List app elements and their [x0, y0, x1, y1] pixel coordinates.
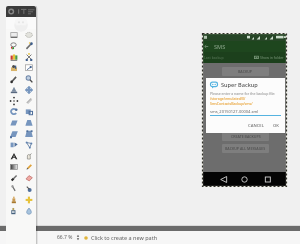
staticText: CREATE BACKUPS — [231, 134, 261, 139]
staticText: 66.7 % — [57, 234, 73, 241]
staticText: CANCEL — [248, 123, 264, 129]
button[interactable]: BACKUP — [222, 67, 269, 76]
button[interactable]: CREATE BACKUPS — [222, 132, 269, 141]
button[interactable]: Back — [202, 41, 211, 52]
button[interactable]: BACKUP ALL MESSAGES — [222, 144, 269, 153]
button[interactable]: Color Picker — [6, 73, 21, 84]
staticText: SMS — [214, 43, 226, 51]
button[interactable]: Alignment — [6, 95, 21, 106]
button[interactable]: Perspective — [21, 117, 36, 128]
button[interactable]: Foreground Select — [6, 62, 21, 73]
staticText: sms_20150127-00004.xml — [210, 109, 259, 114]
button[interactable]: Text — [6, 150, 21, 161]
button[interactable]: Cage Transform — [21, 139, 36, 150]
staticText: SmsContactsBackup/sms/ — [210, 101, 253, 106]
button[interactable]: Scale — [21, 106, 36, 117]
button[interactable]: Blur / Sharpen — [21, 205, 36, 216]
button[interactable]: Measure — [6, 84, 21, 95]
button[interactable]: Crop — [21, 95, 36, 106]
button[interactable]: Free Select — [6, 40, 21, 51]
button[interactable]: Rectangle Select — [6, 29, 21, 40]
button[interactable]: CANCEL — [246, 122, 266, 130]
button[interactable]: Gradient — [6, 161, 21, 172]
button[interactable]: Ink — [21, 183, 36, 194]
button[interactable]: Intelligent Scissors — [21, 51, 36, 62]
button[interactable]: Unified Transform — [6, 128, 21, 139]
button[interactable]: Paintbrush — [6, 172, 21, 183]
staticText: Last backup — [204, 55, 224, 60]
button[interactable]: Ellipse Select — [21, 29, 36, 40]
button[interactable]: Handle Transform — [21, 128, 36, 139]
button[interactable]: Clone — [6, 194, 21, 205]
button[interactable]: Perspective Clone — [6, 205, 21, 216]
staticText: Click to create a new path — [91, 234, 158, 241]
button[interactable]: Heal — [21, 194, 36, 205]
button[interactable]: Paths — [21, 62, 36, 73]
staticText: Show in folder — [260, 55, 284, 60]
button[interactable]: Zoom — [21, 73, 36, 84]
button[interactable]: Select by Color — [6, 51, 21, 62]
button[interactable]: Move — [21, 84, 36, 95]
staticText: OK — [273, 123, 279, 129]
button[interactable]: Fuzzy Select — [21, 40, 36, 51]
staticText: Please enter a name for the backup file: — [210, 91, 276, 96]
staticText: BACKUP — [238, 69, 253, 74]
button[interactable]: Shear — [6, 117, 21, 128]
button[interactable]: OK — [271, 122, 281, 130]
button[interactable]: Toolbox window title bar — [6, 6, 36, 17]
button[interactable]: Pencil — [21, 161, 36, 172]
button[interactable]: Flip — [6, 139, 21, 150]
button[interactable]: Eraser — [21, 172, 36, 183]
staticText: Super Backup — [221, 81, 258, 89]
staticText: /storage/emulated/0/ — [210, 96, 246, 101]
staticText: BACKUP ALL MESSAGES — [225, 146, 266, 151]
button[interactable]: Airbrush — [6, 183, 21, 194]
button[interactable]: Rotate — [6, 106, 21, 117]
button[interactable]: Smudge — [21, 150, 36, 161]
